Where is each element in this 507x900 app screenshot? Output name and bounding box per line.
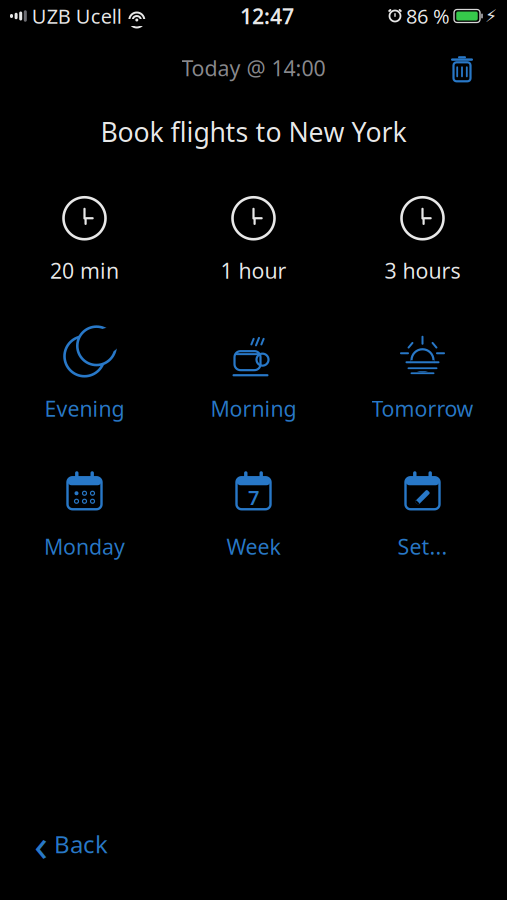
button[interactable]: ‹ <box>22 806 120 882</box>
staticText: Week <box>226 532 280 560</box>
staticText: ‹ <box>34 814 48 874</box>
staticText: Set... <box>397 532 447 560</box>
button[interactable]: Delete <box>441 44 483 92</box>
staticText: UZB Ucell <box>32 3 122 29</box>
staticText: 7 <box>248 484 259 511</box>
button[interactable]: 3 hours <box>338 191 507 287</box>
button[interactable]: Set... <box>338 467 507 563</box>
button[interactable]: Morning <box>169 329 338 425</box>
staticText: Back <box>54 828 108 860</box>
staticText: Monday <box>44 532 125 560</box>
button[interactable]: 7 <box>169 467 338 563</box>
button[interactable]: Monday <box>0 467 169 563</box>
staticText: 3 hours <box>384 256 460 284</box>
staticText: 20 min <box>50 256 119 284</box>
staticText: 86 % <box>406 3 450 29</box>
button[interactable]: 20 min <box>0 191 169 287</box>
staticText: Morning <box>210 394 296 422</box>
staticText: Book flights to New York <box>100 114 406 149</box>
button[interactable]: Evening <box>0 329 169 425</box>
button[interactable]: 1 hour <box>169 191 338 287</box>
staticText: Tomorrow <box>371 394 473 422</box>
staticText: Evening <box>44 394 124 422</box>
staticText: Today @ 14:00 <box>181 54 325 82</box>
staticText: ⚡︎ <box>485 6 497 26</box>
button[interactable]: Tomorrow <box>338 329 507 425</box>
staticText: 1 hour <box>220 256 286 284</box>
staticText: 12:47 <box>240 2 294 30</box>
